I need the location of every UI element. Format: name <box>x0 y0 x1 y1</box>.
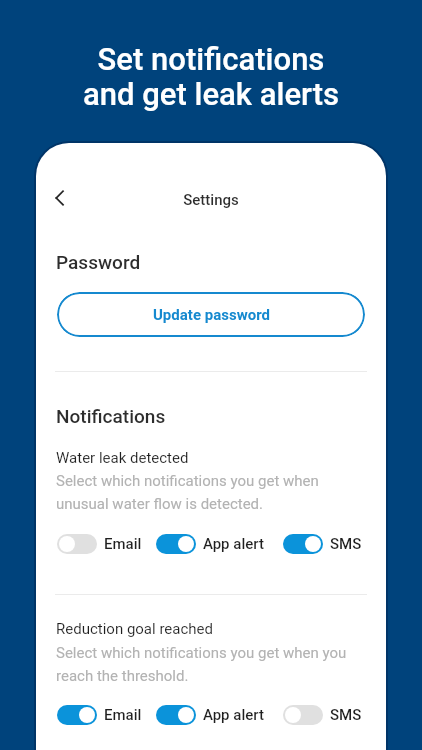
staticText: SMS <box>330 535 362 553</box>
staticText: Select which notifications you get when … <box>56 644 347 685</box>
button[interactable]: Email <box>57 705 142 725</box>
staticText: Reduction goal reached <box>56 620 213 638</box>
staticText: Settings <box>36 191 386 209</box>
button[interactable]: Update password <box>57 292 365 337</box>
staticText: Update password <box>153 306 270 324</box>
staticText: SMS <box>330 706 362 724</box>
button[interactable]: SMS <box>283 534 362 554</box>
button[interactable]: App alert <box>156 705 264 725</box>
button[interactable]: App alert <box>156 534 264 554</box>
staticText: Email <box>104 535 142 553</box>
staticText: App alert <box>203 706 264 724</box>
staticText: Water leak detected <box>56 449 189 467</box>
staticText: Set notifications and get leak alerts <box>0 41 422 113</box>
staticText: App alert <box>203 535 264 553</box>
staticText: Email <box>104 706 142 724</box>
button[interactable]: Email <box>57 534 142 554</box>
staticText: Password <box>56 251 141 273</box>
button[interactable]: Back <box>41 178 81 218</box>
staticText: Select which notifications you get when … <box>56 472 319 513</box>
staticText: Notifications <box>56 405 166 427</box>
button[interactable]: SMS <box>283 705 362 725</box>
